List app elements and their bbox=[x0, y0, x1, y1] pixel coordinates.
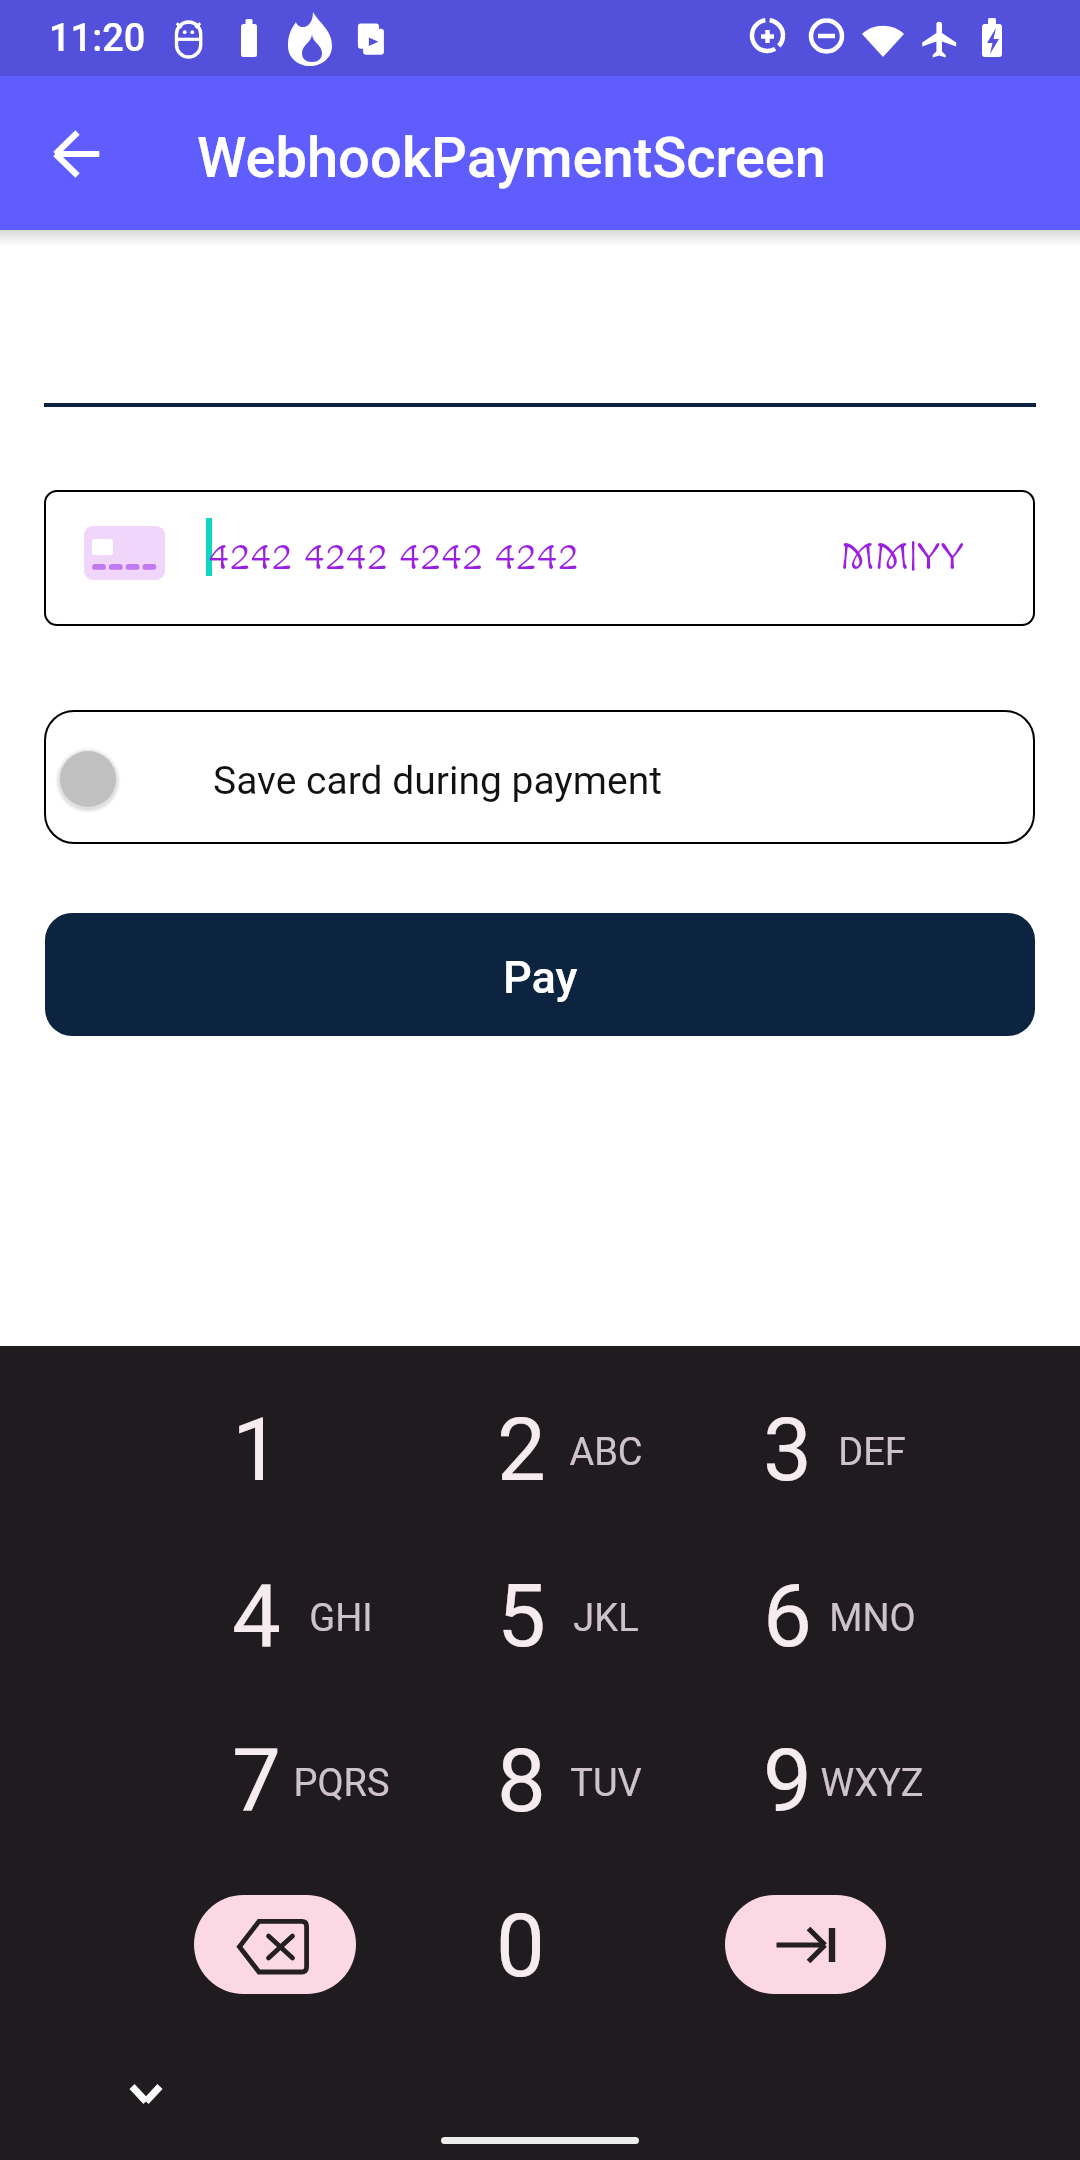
button[interactable]: 9 bbox=[703, 1720, 1003, 1872]
staticText: 4242 4242 4242 4242 bbox=[208, 535, 579, 580]
button[interactable]: 7 bbox=[172, 1720, 472, 1872]
staticText: 11:20 bbox=[49, 16, 146, 61]
button[interactable]: 4 bbox=[172, 1555, 472, 1707]
staticText: 8 bbox=[497, 1730, 546, 1832]
staticText: MNO bbox=[829, 1596, 916, 1641]
staticText: 6 bbox=[763, 1565, 812, 1667]
button[interactable]: Pay bbox=[45, 913, 1035, 1036]
staticText: PQRS bbox=[293, 1761, 390, 1806]
button[interactable]: 0 bbox=[460, 1895, 580, 1994]
button[interactable]: 2 bbox=[437, 1389, 737, 1541]
staticText: Save card during payment bbox=[213, 758, 662, 804]
staticText: 4 bbox=[232, 1565, 281, 1667]
staticText: GHI bbox=[309, 1596, 373, 1641]
staticText: 1 bbox=[232, 1399, 281, 1501]
button[interactable]: 3 bbox=[703, 1389, 1003, 1541]
staticText: TUV bbox=[570, 1761, 642, 1806]
staticText: WebhookPaymentScreen bbox=[197, 125, 826, 191]
staticText: MM|YY bbox=[841, 535, 965, 580]
staticText: 3 bbox=[763, 1399, 812, 1501]
staticText: 7 bbox=[232, 1730, 281, 1832]
button[interactable]: 4242 4242 4242 4242 bbox=[44, 490, 1035, 626]
button[interactable]: Save card during payment bbox=[44, 710, 1035, 844]
button[interactable]: Backspace bbox=[194, 1895, 356, 1994]
staticText: DEF bbox=[838, 1430, 906, 1475]
staticText: Pay bbox=[503, 951, 578, 1004]
staticText: ABC bbox=[569, 1430, 643, 1475]
button[interactable]: Next field bbox=[725, 1895, 886, 1994]
button[interactable]: Back bbox=[28, 106, 124, 202]
staticText: 0 bbox=[496, 1895, 545, 1994]
staticText: 5 bbox=[497, 1565, 546, 1667]
staticText: 2 bbox=[497, 1399, 546, 1501]
button[interactable]: 5 bbox=[437, 1555, 737, 1707]
staticText: WXYZ bbox=[820, 1761, 924, 1806]
button[interactable]: 8 bbox=[437, 1720, 737, 1872]
staticText: JKL bbox=[573, 1596, 639, 1641]
button[interactable]: 6 bbox=[703, 1555, 1003, 1707]
staticText: 9 bbox=[763, 1730, 812, 1832]
button[interactable]: 1 bbox=[172, 1389, 472, 1541]
button[interactable]: Hide keyboard bbox=[120, 2068, 172, 2120]
